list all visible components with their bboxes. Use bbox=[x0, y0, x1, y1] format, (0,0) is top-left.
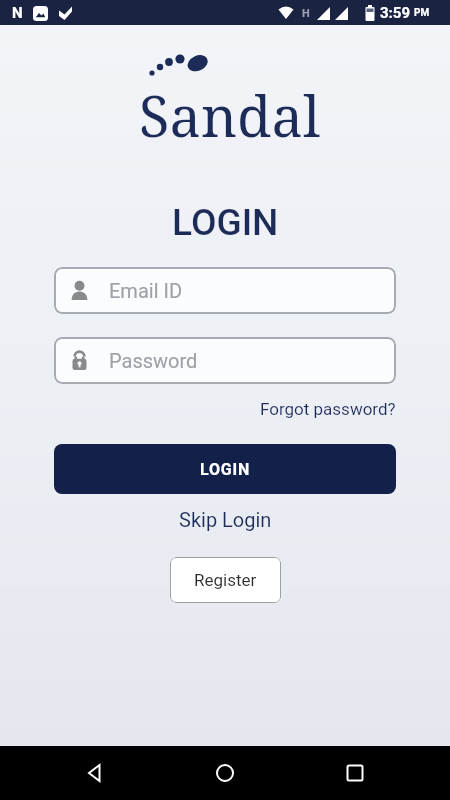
button[interactable] bbox=[200, 746, 250, 800]
staticText: Sandal bbox=[139, 77, 321, 153]
button[interactable] bbox=[70, 746, 120, 800]
staticText: Password bbox=[109, 349, 198, 372]
button[interactable]: Password bbox=[54, 337, 396, 384]
staticText: N bbox=[12, 4, 23, 22]
button[interactable]: Register bbox=[170, 557, 281, 603]
staticText: Email ID bbox=[109, 279, 183, 302]
button[interactable]: Forgot password? bbox=[260, 399, 396, 419]
button[interactable]: LOGIN bbox=[54, 444, 396, 494]
staticText: PM bbox=[414, 7, 430, 19]
staticText: LOGIN bbox=[200, 460, 251, 479]
button[interactable]: Email ID bbox=[54, 267, 396, 314]
button[interactable] bbox=[330, 746, 380, 800]
button[interactable]: Skip Login bbox=[179, 508, 272, 531]
staticText: H bbox=[302, 7, 310, 20]
staticText: 3:59 bbox=[380, 4, 411, 22]
staticText: LOGIN bbox=[172, 201, 279, 244]
staticText: Register bbox=[194, 570, 257, 590]
